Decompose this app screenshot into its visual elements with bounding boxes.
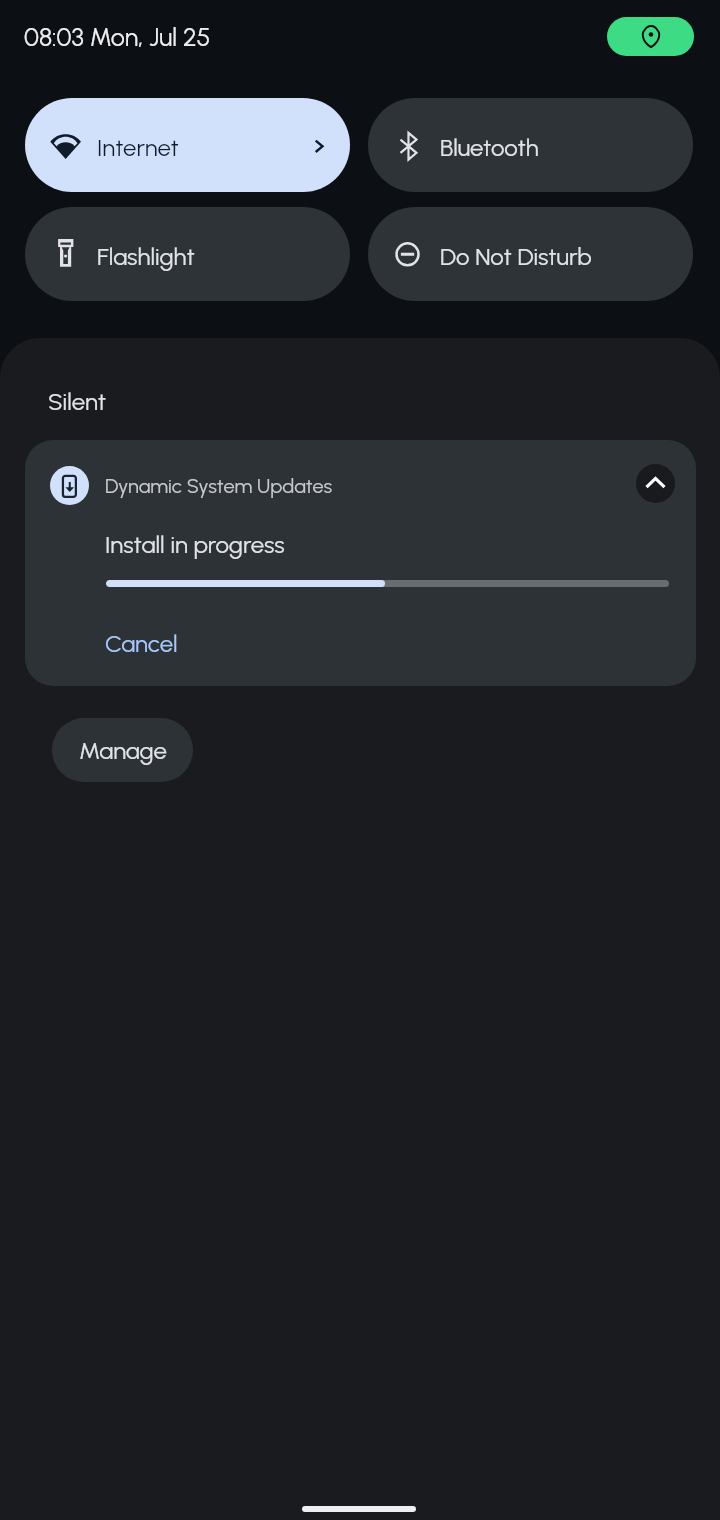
staticText: Flashlight xyxy=(97,242,195,271)
staticText: Cancel xyxy=(105,629,178,658)
staticText: Install in progress xyxy=(105,530,285,559)
staticText: Manage xyxy=(79,736,167,765)
staticText: Dynamic System Updates xyxy=(105,474,333,498)
button[interactable]: Bluetooth xyxy=(368,98,693,192)
button[interactable]: Dynamic System Updates xyxy=(25,440,696,686)
button[interactable]: Flashlight xyxy=(25,207,350,301)
staticText: Bluetooth xyxy=(440,133,539,162)
button[interactable]: Collapse notification xyxy=(636,464,675,503)
button[interactable]: Do Not Disturb xyxy=(368,207,693,301)
staticText: Internet xyxy=(97,133,179,162)
staticText: Silent xyxy=(48,387,107,416)
staticText: Do Not Disturb xyxy=(440,242,592,271)
button[interactable]: Internet xyxy=(25,98,350,192)
button[interactable]: Cancel xyxy=(92,620,191,667)
button[interactable]: Location in use xyxy=(607,17,694,56)
staticText: 08:03 Mon, Jul 25 xyxy=(24,22,211,52)
button[interactable]: Manage xyxy=(52,718,193,782)
